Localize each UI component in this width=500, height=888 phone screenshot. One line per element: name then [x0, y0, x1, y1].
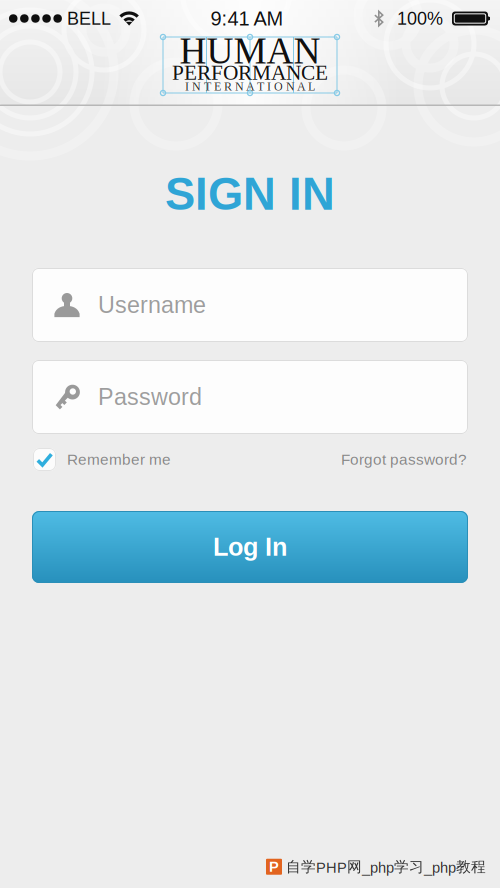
button[interactable]: Remember me: [33, 444, 171, 475]
staticText: 自学PHP网_php学习_php教程: [286, 857, 486, 876]
staticText: Remember me: [67, 451, 171, 468]
staticText: HUMAN: [179, 30, 320, 72]
staticText: SIGN IN: [165, 169, 335, 219]
staticText: I N T E R N A T I O N A L: [185, 80, 315, 93]
staticText: P: [269, 859, 279, 875]
staticText: BELL: [67, 8, 111, 28]
staticText: 100%: [397, 8, 443, 28]
button[interactable]: Forgot password?: [341, 444, 467, 475]
staticText: Password: [98, 384, 202, 410]
staticText: 9:41 AM: [210, 7, 283, 30]
staticText: Username: [98, 292, 206, 318]
button[interactable]: Log In: [32, 511, 468, 583]
staticText: Forgot password?: [341, 451, 467, 468]
staticText: PERFORMANCE: [172, 61, 328, 84]
staticText: Log In: [213, 533, 287, 561]
